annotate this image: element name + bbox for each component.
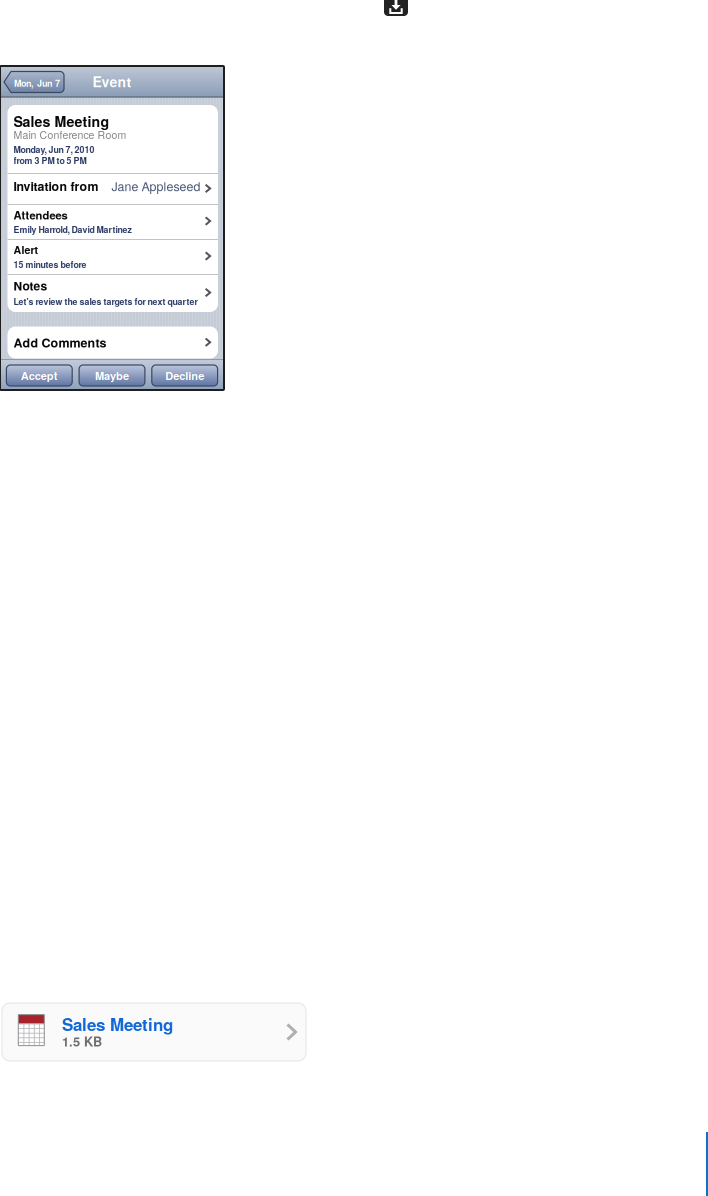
button[interactable]: Maybe: [79, 365, 145, 386]
staticText: Notes: [13, 277, 47, 294]
staticText: Decline: [165, 368, 204, 383]
staticText: 15 minutes before: [13, 258, 86, 271]
button[interactable]: Attendees: [7, 204, 218, 239]
staticText: Jane Appleseed: [111, 177, 200, 195]
button[interactable]: Download: [384, 0, 408, 16]
button[interactable]: Add Comments: [7, 326, 218, 358]
staticText: Emily Harrold, David Martinez: [13, 223, 131, 236]
staticText: 1.5 KB: [62, 1032, 102, 1050]
button[interactable]: Notes: [7, 274, 218, 312]
button[interactable]: Sales Meeting: [2, 1003, 306, 1061]
button[interactable]: Mon, Jun 7: [4, 71, 64, 92]
staticText: Sales Meeting: [13, 111, 109, 131]
button[interactable]: Alert: [7, 239, 218, 274]
button[interactable]: Decline: [152, 365, 218, 386]
staticText: Attendees: [13, 207, 67, 223]
staticText: Monday, Jun 7, 2010: [13, 143, 94, 156]
staticText: Main Conference Room: [13, 127, 126, 142]
staticText: Mon, Jun 7: [14, 77, 60, 89]
button[interactable]: Accept: [6, 365, 72, 386]
staticText: Invitation from: [13, 177, 98, 195]
staticText: Maybe: [95, 368, 129, 383]
staticText: Accept: [21, 368, 58, 383]
staticText: Event: [92, 71, 131, 91]
staticText: Alert: [13, 242, 38, 257]
staticText: Sales Meeting: [62, 1012, 173, 1036]
staticText: from 3 PM to 5 PM: [13, 154, 86, 167]
staticText: Add Comments: [13, 333, 106, 351]
button[interactable]: Invitation from: [7, 173, 218, 204]
staticText: Let's review the sales targets for next …: [13, 295, 197, 308]
